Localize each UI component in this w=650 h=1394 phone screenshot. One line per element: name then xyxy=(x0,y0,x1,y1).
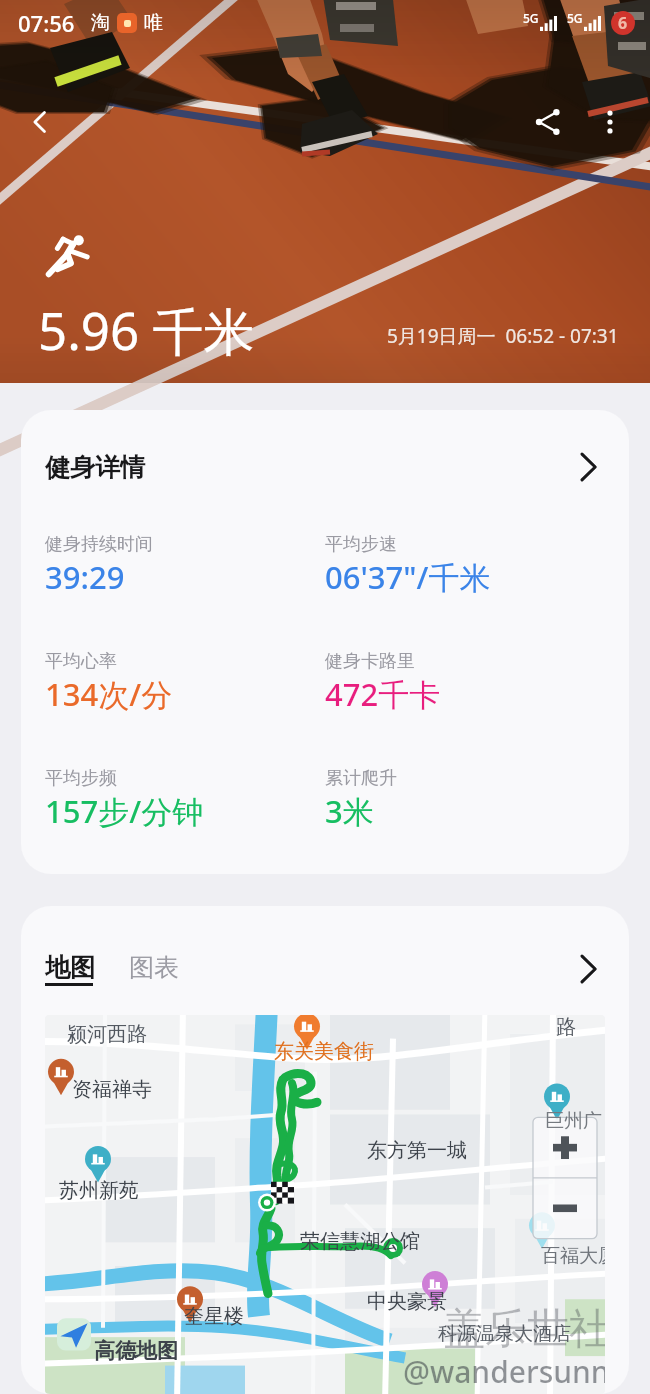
button[interactable]: 健身详情 xyxy=(21,410,629,874)
staticText: 高德地图 xyxy=(94,1338,178,1364)
staticText: 科源温泉大酒店 xyxy=(438,1322,571,1346)
staticText: 472千卡 xyxy=(325,673,441,715)
staticText: 百福大厦 xyxy=(541,1244,605,1268)
staticText: 5G xyxy=(567,10,583,26)
button[interactable]: More options xyxy=(582,94,638,150)
staticText: 苏州新苑 xyxy=(59,1178,139,1203)
staticText: 奎星楼 xyxy=(184,1304,244,1329)
staticText: 东关美食街 xyxy=(274,1039,374,1064)
staticText: 6 xyxy=(618,12,628,34)
staticText: 路 xyxy=(556,1015,576,1040)
staticText: 淘 xyxy=(91,11,110,35)
staticText: 06'37"/千米 xyxy=(325,556,491,598)
button[interactable]: 图表 xyxy=(129,952,179,983)
staticText: 5.96 千米 xyxy=(38,295,255,365)
staticText: 盖乐世社区 xyxy=(443,1303,605,1356)
staticText: 巨州广 xyxy=(545,1109,602,1133)
button[interactable]: Back xyxy=(12,94,68,150)
staticText: 图表 xyxy=(129,952,179,983)
button[interactable]: 地图 xyxy=(45,952,95,986)
staticText: 颍河西路 xyxy=(67,1022,147,1047)
staticText: 荣信慧湖公馆 xyxy=(300,1229,420,1254)
staticText: 累计爬升 xyxy=(325,767,397,790)
staticText: 平均心率 xyxy=(45,650,117,673)
staticText: 健身持续时间 xyxy=(45,533,153,556)
staticText: 157步/分钟 xyxy=(45,790,204,832)
staticText: 5G xyxy=(523,10,539,26)
staticText: 07:56 xyxy=(18,8,75,38)
staticText: 东方第一城 xyxy=(367,1138,467,1163)
staticText: 健身详情 xyxy=(45,452,145,483)
staticText: 平均步速 xyxy=(325,533,397,556)
staticText: 平均步频 xyxy=(45,767,117,790)
staticText: 5月19日周一 06:52 - 07:31 xyxy=(387,323,619,349)
staticText: 资福禅寺 xyxy=(72,1077,152,1102)
staticText: 唯 xyxy=(144,11,163,35)
staticText: 中央豪景 xyxy=(367,1289,447,1314)
staticText: 39:29 xyxy=(45,556,125,598)
button[interactable]: Route map xyxy=(45,1015,605,1394)
staticText: 地图 xyxy=(45,952,95,983)
staticText: 健身卡路里 xyxy=(325,650,415,673)
button[interactable]: Share xyxy=(520,94,576,150)
staticText: 134次/分 xyxy=(45,673,173,715)
staticText: @wandersunny xyxy=(403,1351,605,1392)
staticText: 3米 xyxy=(325,790,374,832)
